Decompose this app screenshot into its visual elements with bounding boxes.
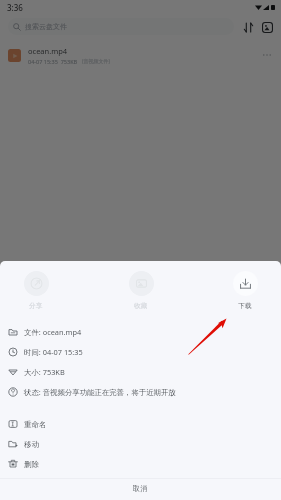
staticText: 删除: [24, 460, 39, 469]
staticText: 搜索云盘文件: [25, 22, 67, 31]
button[interactable]: 下载: [219, 261, 271, 322]
staticText: 状态: 音视频分享功能正在完善，将于近期开放: [24, 387, 176, 397]
staticText: 04-07 15:35 753KB: [28, 58, 78, 65]
staticText: 移动: [24, 440, 39, 449]
staticText: 分享: [29, 302, 43, 310]
staticText: 文件: ocean.mp4: [24, 327, 82, 337]
button[interactable]: 收藏: [115, 261, 167, 322]
staticText: 大小: 753KB: [24, 367, 65, 377]
button[interactable]: 取消: [0, 479, 281, 500]
button[interactable]: 搜索云盘文件: [8, 18, 234, 35]
staticText: (音视频文件): [82, 58, 111, 65]
button[interactable]: 分享: [10, 261, 62, 322]
button[interactable]: 重命名: [0, 414, 281, 434]
button[interactable]: Switch view: [259, 19, 275, 35]
staticText: 重命名: [24, 420, 47, 429]
staticText: 取消: [133, 484, 148, 493]
button[interactable]: 删除: [0, 454, 281, 474]
staticText: 收藏: [134, 302, 148, 310]
button[interactable]: More options: [259, 47, 275, 63]
button[interactable]: Sort: [240, 19, 256, 35]
button[interactable]: 移动: [0, 434, 281, 454]
staticText: 下载: [238, 302, 252, 310]
staticText: 时间: 04-07 15:35: [24, 347, 83, 357]
staticText: 3:36: [7, 2, 23, 13]
staticText: ocean.mp4: [28, 46, 68, 56]
button[interactable]: ocean.mp4: [0, 38, 281, 72]
